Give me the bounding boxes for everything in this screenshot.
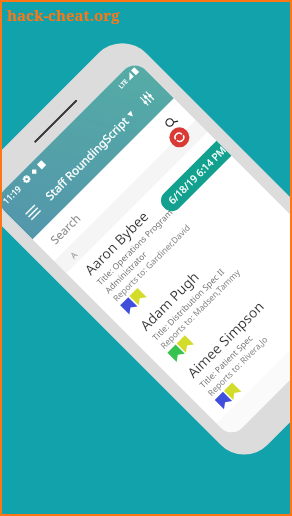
- staticText: A: [67, 248, 80, 261]
- staticText: LTE: [116, 77, 129, 90]
- staticText: Administrator: [102, 248, 149, 296]
- staticText: Search: [47, 210, 84, 247]
- button[interactable]: Menu: [18, 198, 47, 226]
- staticText: Title: Operations Program: [94, 206, 175, 287]
- staticText: hack-cheat.org: [7, 5, 120, 25]
- staticText: Title: Distribution Spec II: [149, 266, 227, 343]
- button[interactable]: Adam Pugh: [122, 187, 292, 376]
- button[interactable]: Search: [33, 98, 196, 261]
- staticText: Aimee Simpson: [183, 297, 269, 382]
- staticText: Reports to: Madsen,Tammy: [158, 266, 242, 351]
- staticText: Staff RoundingScript: [42, 113, 131, 203]
- button[interactable]: Filter: [133, 84, 161, 112]
- staticText: Adam Pugh: [136, 267, 203, 335]
- staticText: Title: Patient Spec: [197, 332, 255, 390]
- button[interactable]: Sync: [165, 123, 194, 151]
- staticText: Aaron Bybee: [80, 207, 153, 279]
- staticText: Reports to: Gardiner,David: [110, 222, 192, 304]
- button[interactable]: 6/18/19 6:14 PM: [157, 141, 232, 216]
- staticText: 11:19: [0, 182, 24, 206]
- button[interactable]: Aimee Simpson: [169, 235, 292, 423]
- button[interactable]: Aaron Bybee: [66, 132, 263, 329]
- staticText: 6/18/19 6:14 PM: [165, 143, 229, 207]
- staticText: Reports to: Rivera,Jo: [205, 333, 270, 398]
